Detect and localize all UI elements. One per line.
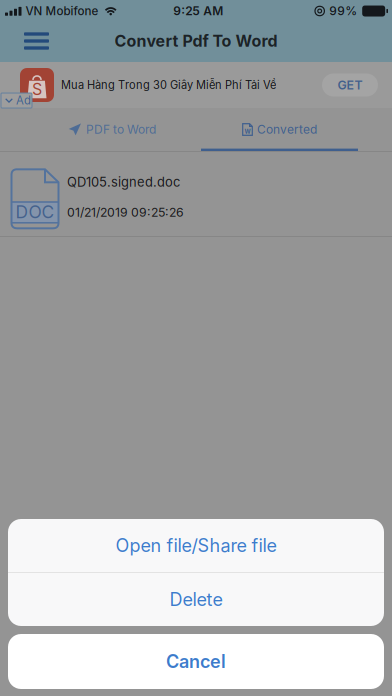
button[interactable]: DOC <box>0 152 392 237</box>
staticText: QD105.signed.doc <box>67 174 180 190</box>
staticText: w <box>244 127 250 135</box>
staticText: DOC <box>15 201 54 222</box>
staticText: Converted <box>257 122 317 137</box>
staticText: Ad <box>16 94 31 107</box>
button[interactable]: Menu <box>0 20 64 62</box>
staticText: Delete <box>169 589 222 610</box>
button[interactable]: Open file/Share file <box>8 519 384 572</box>
staticText: Mua Hàng Trong 30 Giây Miễn Phí Tải Về <box>61 78 276 92</box>
button[interactable]: S <box>0 62 392 108</box>
staticText: 01/21/2019 09:25:26 <box>67 205 184 220</box>
staticText: S <box>32 79 42 99</box>
staticText: GET <box>337 77 362 92</box>
staticText: VN Mobifone <box>25 4 98 18</box>
button[interactable]: w <box>196 108 392 151</box>
staticText: Cancel <box>166 651 226 672</box>
button[interactable]: PDF to Word <box>0 108 196 151</box>
staticText: Open file/Share file <box>115 535 276 556</box>
staticText: 9:25 AM <box>173 4 223 18</box>
staticText: 99% <box>329 4 357 18</box>
staticText: Convert Pdf To Word <box>114 31 277 51</box>
button[interactable]: Delete <box>8 573 384 626</box>
button[interactable]: Cancel <box>8 634 384 689</box>
staticText: PDF to Word <box>86 122 156 137</box>
